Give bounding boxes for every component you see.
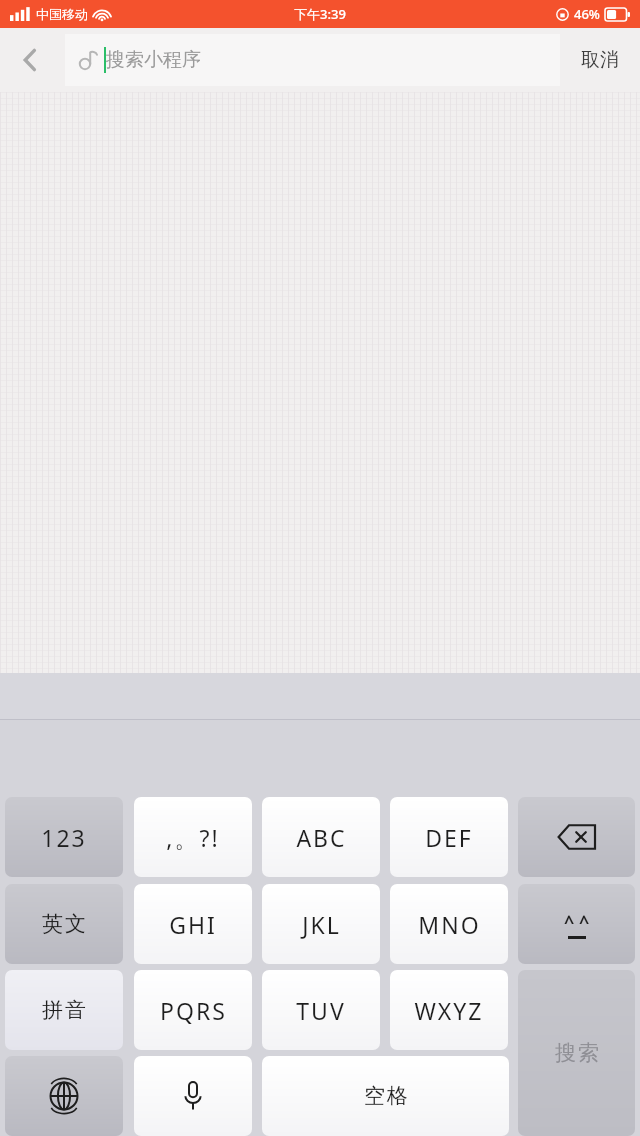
staticText: GHI: [169, 909, 217, 940]
button[interactable]: Voice input: [134, 1056, 252, 1136]
staticText: 123: [41, 822, 87, 853]
button[interactable]: PQRS: [134, 970, 252, 1050]
staticText: ,。?!: [166, 822, 220, 853]
staticText: 中国移动: [36, 6, 88, 22]
staticText: 46%: [574, 5, 600, 23]
button[interactable]: WXYZ: [390, 970, 508, 1050]
button[interactable]: 搜索小程序: [65, 34, 560, 86]
button[interactable]: 拼音: [5, 970, 123, 1050]
staticText: ^ ^: [564, 910, 590, 935]
staticText: WXYZ: [414, 995, 484, 1026]
staticText: JKL: [302, 909, 341, 940]
staticText: 拼音: [41, 997, 87, 1023]
button[interactable]: JKL: [262, 884, 380, 964]
button[interactable]: Switch language: [5, 1056, 123, 1136]
staticText: ABC: [296, 822, 347, 853]
button[interactable]: MNO: [390, 884, 508, 964]
button[interactable]: Back: [0, 28, 60, 92]
staticText: 空格: [363, 1083, 409, 1109]
button[interactable]: 英文: [5, 884, 123, 964]
staticText: DEF: [425, 822, 473, 853]
button[interactable]: ^ ^: [518, 884, 635, 964]
button[interactable]: Backspace: [518, 797, 635, 877]
button[interactable]: 空格: [262, 1056, 509, 1136]
staticText: 英文: [41, 911, 87, 937]
button[interactable]: GHI: [134, 884, 252, 964]
staticText: 取消: [581, 48, 619, 72]
button[interactable]: ,。?!: [134, 797, 252, 877]
staticText: 搜索: [554, 1040, 600, 1066]
staticText: 下午3:39: [294, 5, 346, 23]
staticText: 搜索小程序: [106, 48, 201, 72]
button[interactable]: 123: [5, 797, 123, 877]
staticText: PQRS: [160, 995, 227, 1026]
button[interactable]: 搜索: [518, 970, 635, 1136]
button[interactable]: TUV: [262, 970, 380, 1050]
staticText: TUV: [296, 995, 346, 1026]
button[interactable]: ABC: [262, 797, 380, 877]
staticText: MNO: [418, 909, 481, 940]
button[interactable]: DEF: [390, 797, 508, 877]
button[interactable]: 取消: [560, 28, 640, 92]
